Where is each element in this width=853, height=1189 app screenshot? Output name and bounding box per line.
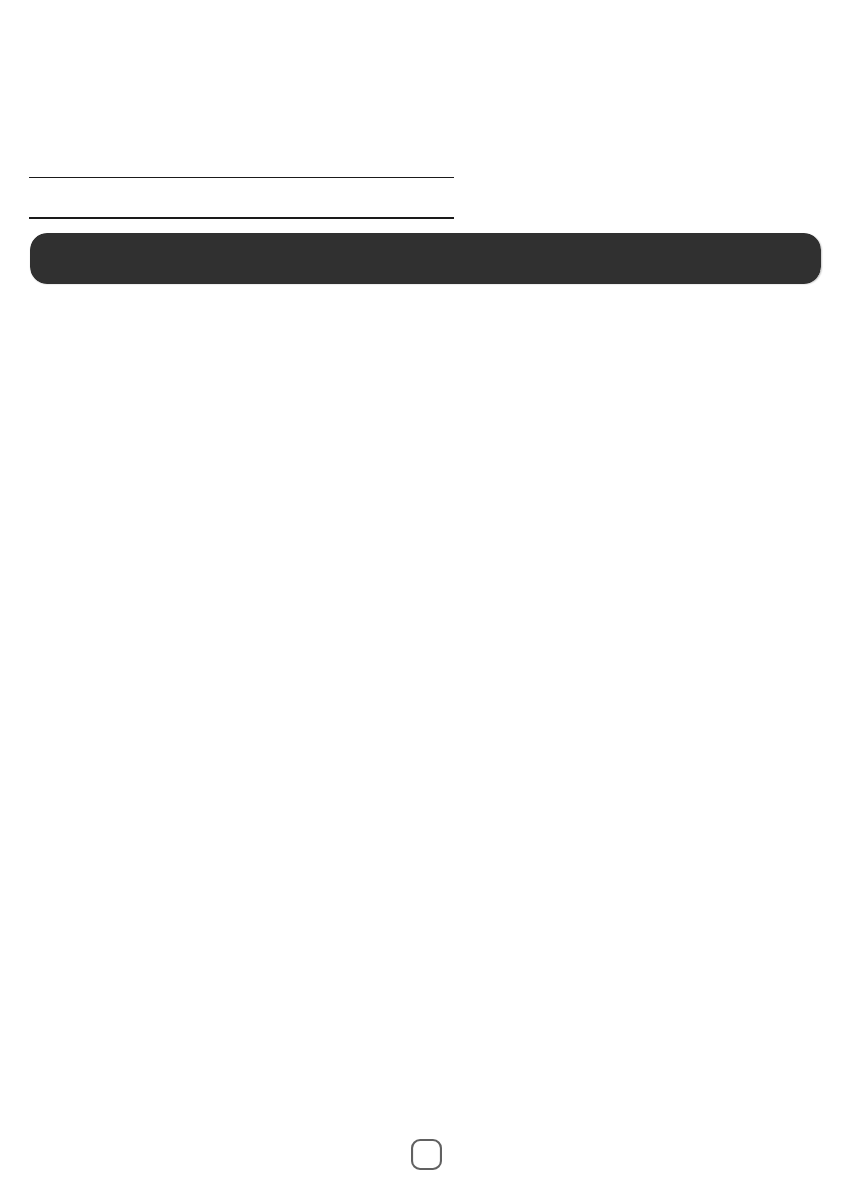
button[interactable]: Text field, focused: [29, 179, 454, 219]
button[interactable]: Recents: [411, 1139, 442, 1170]
button[interactable]: Text field: [29, 137, 454, 178]
button[interactable]: Submit: [30, 233, 821, 284]
